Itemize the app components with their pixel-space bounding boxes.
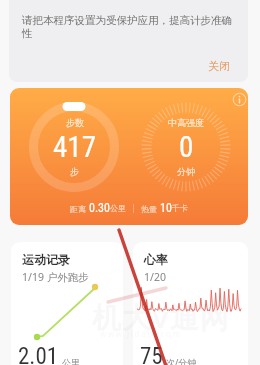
staticText: 运动记录 — [22, 252, 70, 267]
button[interactable]: 心率 — [133, 242, 248, 365]
staticText: 417 — [53, 130, 96, 164]
staticText: 公里 — [62, 357, 80, 365]
staticText: 2.01 — [18, 343, 59, 365]
button[interactable]: 运动记录 — [11, 242, 123, 365]
staticText: 机大v通网 — [92, 297, 230, 337]
staticText: 1/19 户外跑步 — [22, 270, 89, 284]
button[interactable]: Info — [10, 88, 248, 225]
staticText: 热量 — [141, 203, 160, 214]
button[interactable]: Info — [232, 92, 247, 107]
staticText: 公里 — [110, 203, 126, 213]
staticText: 10 — [160, 201, 172, 215]
staticText: 步数 — [66, 117, 84, 128]
staticText: 分钟 — [177, 166, 195, 177]
staticText: 请把本程序设置为受保护应用，提高计步准确性 — [22, 14, 238, 40]
staticText: 1/20 — [144, 270, 166, 284]
staticText: 中高强度 — [168, 117, 204, 128]
button[interactable]: 关闭 — [201, 56, 237, 76]
staticText: 0 — [179, 130, 194, 164]
staticText: 步 — [70, 166, 79, 177]
staticText: 次/分钟 — [166, 356, 197, 365]
staticText: 千卡 — [172, 203, 188, 213]
staticText: 心率 — [144, 252, 168, 267]
staticText: 关闭 — [208, 59, 230, 73]
staticText: 75 — [140, 343, 163, 365]
staticText: 距离 — [70, 203, 89, 214]
staticText: www.jidatv.com — [100, 328, 182, 339]
staticText: 0.30 — [89, 201, 110, 215]
